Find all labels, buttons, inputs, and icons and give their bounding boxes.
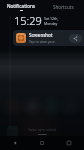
button[interactable]: Recents — [57, 136, 81, 150]
staticText: 15:29 — [14, 13, 42, 27]
button[interactable]: Screenshot captured. — [13, 30, 84, 46]
button[interactable]: Home — [30, 136, 54, 150]
button[interactable]: Back — [3, 136, 27, 150]
button[interactable]: Share screenshot — [69, 34, 82, 43]
staticText: Notifications — [7, 3, 36, 9]
button[interactable]: Shortcuts — [42, 0, 84, 13]
button[interactable]: Notifications — [0, 0, 42, 13]
staticText: Sat 12th, — [44, 16, 59, 21]
staticText: Swipe up to unlock — [28, 128, 57, 132]
staticText: Shortcuts — [53, 4, 74, 10]
staticText: Tap to view your screenshot — [29, 39, 67, 44]
staticText: Monday — [44, 21, 58, 26]
staticText: Screenshot captured. — [29, 32, 67, 38]
